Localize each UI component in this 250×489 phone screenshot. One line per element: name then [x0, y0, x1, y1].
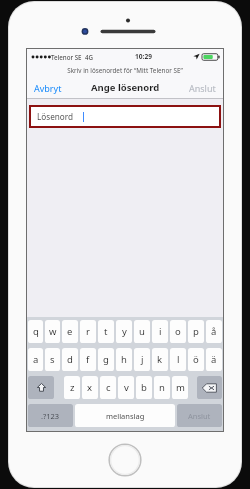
button[interactable]: i [152, 320, 168, 343]
button[interactable]: o [170, 320, 186, 343]
staticText: Avbryt [34, 82, 62, 94]
staticText: 4G [85, 53, 94, 61]
button[interactable]: Home button [108, 443, 142, 477]
button[interactable]: mellanslag [75, 404, 175, 427]
staticText: ä [211, 353, 217, 366]
button[interactable]: j [134, 348, 150, 371]
staticText: c [106, 381, 111, 394]
button[interactable]: k [152, 348, 168, 371]
button[interactable]: z [64, 376, 80, 399]
staticText: g [103, 353, 109, 366]
staticText: o [175, 325, 181, 338]
staticText: y [122, 325, 127, 338]
staticText: Anslut [188, 411, 211, 421]
button[interactable]: Anslut [182, 77, 223, 98]
staticText: b [141, 381, 147, 394]
button[interactable]: Anslut [177, 404, 222, 427]
staticText: n [159, 381, 165, 394]
button[interactable]: h [116, 348, 132, 371]
staticText: v [124, 381, 129, 394]
staticText: u [139, 325, 145, 338]
staticText: w [49, 325, 57, 338]
button[interactable]: ö [188, 348, 204, 371]
staticText: Skriv in lösenordet för “Mitt Telenor SE… [67, 66, 183, 75]
button[interactable]: v [118, 376, 134, 399]
button[interactable]: t [98, 320, 114, 343]
button[interactable]: Avbryt [27, 77, 69, 98]
staticText: j [141, 353, 144, 366]
staticText: h [121, 353, 127, 366]
button[interactable]: f [80, 348, 96, 371]
button[interactable]: d [62, 348, 78, 371]
staticText: t [104, 325, 108, 338]
staticText: å [211, 325, 217, 338]
staticText: e [67, 325, 73, 338]
staticText: s [50, 353, 55, 366]
staticText: Ange lösenord [91, 81, 160, 94]
staticText: .?123 [41, 411, 60, 421]
staticText: x [87, 381, 93, 394]
button[interactable]: l [170, 348, 186, 371]
button[interactable]: b [136, 376, 152, 399]
button[interactable]: Lösenord [31, 107, 219, 126]
button[interactable]: q [28, 320, 43, 343]
button[interactable]: p [188, 320, 204, 343]
button[interactable]: w [45, 320, 60, 343]
button[interactable]: y [116, 320, 132, 343]
button[interactable]: s [45, 348, 60, 371]
staticText: l [177, 353, 180, 366]
button[interactable]: g [98, 348, 114, 371]
button[interactable]: Shift [28, 376, 54, 399]
staticText: mellanslag [106, 411, 145, 421]
staticText: Anslut [189, 82, 216, 94]
staticText: Telenor SE [51, 53, 82, 61]
button[interactable]: e [62, 320, 78, 343]
staticText: m [176, 381, 185, 394]
staticText: z [70, 381, 75, 394]
staticText: p [193, 325, 199, 338]
staticText: q [33, 325, 39, 338]
button[interactable]: .?123 [28, 404, 73, 427]
button[interactable]: u [134, 320, 150, 343]
button[interactable]: Backspace [197, 376, 222, 399]
staticText: 10:29 [135, 52, 152, 61]
staticText: k [157, 353, 163, 366]
staticText: r [86, 325, 90, 338]
staticText: f [86, 353, 90, 366]
button[interactable]: c [100, 376, 116, 399]
staticText: d [67, 353, 73, 366]
staticText: a [33, 353, 39, 366]
staticText: i [159, 325, 162, 338]
staticText: Lösenord [37, 111, 74, 122]
button[interactable]: x [82, 376, 98, 399]
staticText: ö [193, 353, 199, 366]
button[interactable]: n [154, 376, 170, 399]
button[interactable]: å [206, 320, 222, 343]
button[interactable]: m [172, 376, 188, 399]
button[interactable]: r [80, 320, 96, 343]
button[interactable]: ä [206, 348, 222, 371]
button[interactable]: a [28, 348, 43, 371]
